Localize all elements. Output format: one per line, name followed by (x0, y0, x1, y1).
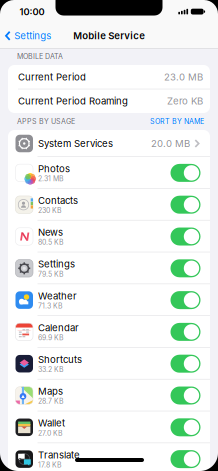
button[interactable]: Contacts (170, 196, 200, 214)
staticText: Current Period Roaming (18, 95, 128, 107)
staticText: 79.5 KB (38, 270, 64, 278)
staticText: Zero KB (167, 95, 203, 107)
staticText: APPS BY USAGE (17, 117, 75, 126)
button[interactable]: Shortcuts (170, 355, 200, 373)
staticText: Settings (38, 258, 75, 270)
staticText: Maps (38, 385, 63, 397)
staticText: Settings (14, 30, 51, 42)
staticText: 27.0 KB (38, 429, 63, 437)
button[interactable]: System Services (8, 130, 210, 157)
staticText: 23.0 MB (164, 71, 203, 83)
button[interactable]: Photos (170, 164, 200, 182)
staticText: 69.9 KB (38, 333, 64, 342)
staticText: 28.7 KB (38, 397, 64, 405)
staticText: Contacts (38, 195, 78, 206)
staticText: Photos (38, 163, 70, 174)
staticText: Translate (38, 449, 80, 461)
button[interactable]: SORT BY NAME (150, 117, 204, 126)
staticText: Weather (38, 290, 77, 302)
staticText: Current Period (18, 71, 86, 83)
button[interactable]: Translate (170, 450, 200, 468)
staticText: Wallet (38, 417, 65, 429)
staticText: 17.8 KB (38, 461, 62, 469)
staticText: 230 KB (38, 206, 62, 215)
staticText: 71.3 KB (38, 302, 63, 310)
button[interactable]: Weather (170, 291, 200, 309)
button[interactable]: Back (5, 29, 51, 43)
staticText: 80.5 KB (38, 238, 64, 246)
staticText: System Services (38, 138, 113, 149)
staticText: SORT BY NAME (150, 117, 204, 126)
staticText: 20.0 MB (151, 138, 190, 149)
staticText: News (38, 226, 63, 238)
staticText: Mobile Service (73, 30, 145, 42)
staticText: Shortcuts (38, 354, 82, 365)
button[interactable]: Calendar (170, 323, 200, 341)
staticText: Calendar (38, 322, 79, 333)
staticText: 10:00 (19, 6, 44, 17)
button[interactable]: Wallet (170, 418, 200, 436)
staticText: 2.31 MB (38, 174, 64, 183)
staticText: MOBILE DATA (17, 52, 63, 61)
button[interactable]: Maps (170, 386, 200, 404)
button[interactable]: Settings (170, 259, 200, 277)
staticText: 33.2 KB (38, 365, 64, 374)
button[interactable]: News (170, 227, 200, 245)
